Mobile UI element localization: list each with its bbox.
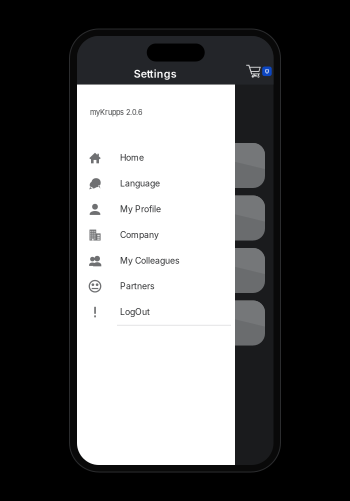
staticText: myKrupps 2.0.6: [90, 108, 143, 117]
staticText: Home: [120, 152, 144, 163]
staticText: My Profile: [120, 204, 161, 214]
button[interactable]: Home: [77, 145, 235, 171]
button[interactable]: My Profile: [77, 196, 235, 222]
button[interactable]: Shopping cart, 0 items: [240, 57, 278, 85]
button[interactable]: My Colleagues: [77, 248, 235, 273]
button[interactable]: LogOut: [77, 299, 235, 325]
button[interactable]: Company: [77, 222, 235, 248]
staticText: LogOut: [120, 307, 150, 317]
staticText: Language: [120, 178, 160, 189]
staticText: Settings: [134, 67, 177, 80]
staticText: Partners: [120, 281, 155, 291]
staticText: 0: [265, 68, 269, 75]
button[interactable]: Language: [77, 171, 235, 196]
button[interactable]: Partners: [77, 273, 235, 299]
staticText: Company: [120, 230, 159, 240]
staticText: My Colleagues: [120, 255, 180, 266]
